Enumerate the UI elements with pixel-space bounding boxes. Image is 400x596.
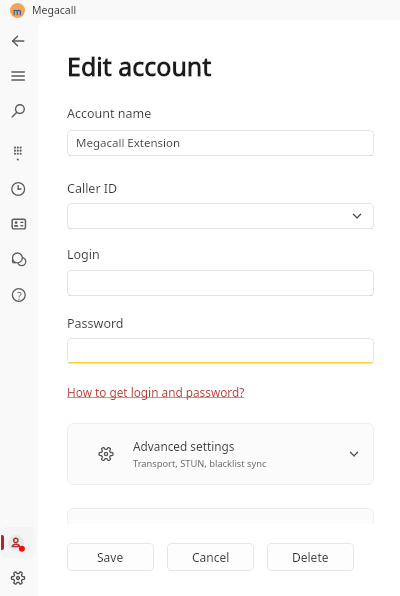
button[interactable]: Help xyxy=(5,281,33,309)
button[interactable]: Search xyxy=(4,96,32,124)
button[interactable]: Contacts xyxy=(4,210,32,238)
button[interactable] xyxy=(67,338,374,364)
staticText: Login xyxy=(67,246,100,263)
button[interactable]: Megacall Extension xyxy=(67,130,374,156)
staticText: Account name xyxy=(67,105,152,122)
button[interactable]: How to get login and password? xyxy=(67,384,245,400)
button[interactable]: Save xyxy=(67,543,154,571)
staticText: m xyxy=(13,5,22,17)
button[interactable] xyxy=(67,270,374,296)
button[interactable]: Dialpad xyxy=(4,140,32,168)
staticText: Advanced settings xyxy=(133,438,235,454)
button[interactable]: Cancel xyxy=(167,543,254,571)
button[interactable] xyxy=(67,203,374,229)
staticText: Edit account xyxy=(67,49,212,83)
button[interactable]: Help xyxy=(4,281,32,309)
button[interactable]: Settings xyxy=(4,564,32,592)
staticText: Cancel xyxy=(192,549,230,565)
button[interactable]: Back xyxy=(4,27,32,55)
staticText: Password xyxy=(67,315,124,332)
button[interactable]: Menu xyxy=(4,62,32,90)
staticText: Megacall Extension xyxy=(76,135,181,151)
button[interactable]: Messages xyxy=(4,244,32,272)
button[interactable]: Advanced settings xyxy=(67,423,374,485)
staticText: Delete xyxy=(292,549,329,565)
button[interactable]: Account xyxy=(1,527,35,558)
staticText: ? xyxy=(17,288,22,303)
staticText: Transport, STUN, blacklist sync xyxy=(133,457,267,470)
button[interactable]: Recent calls xyxy=(4,175,32,203)
button[interactable]: Delete xyxy=(267,543,354,571)
staticText: Caller ID xyxy=(67,180,118,197)
staticText: Megacall xyxy=(32,3,77,17)
staticText: Save xyxy=(97,549,124,565)
